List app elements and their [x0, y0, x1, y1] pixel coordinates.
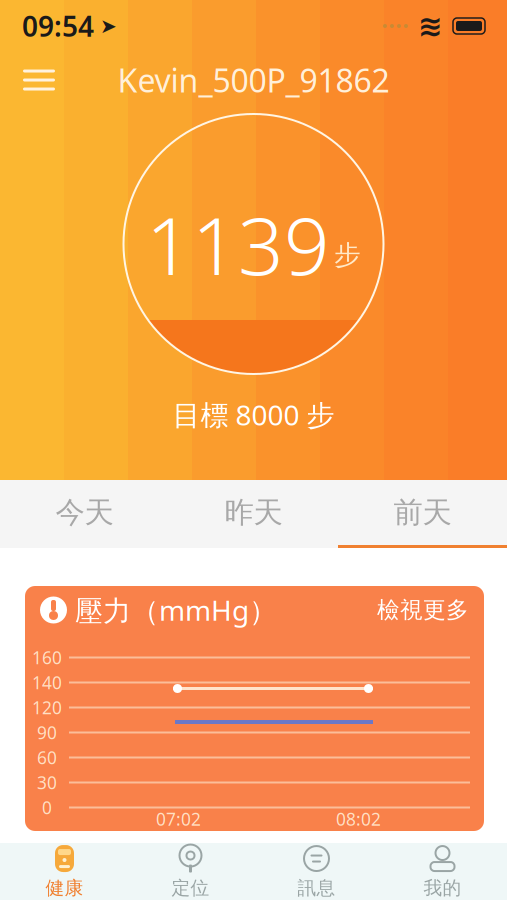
button[interactable]: 檢視更多 — [377, 596, 469, 624]
staticText: 140 — [32, 671, 62, 694]
staticText: 08:02 — [336, 807, 381, 830]
button[interactable]: 定位 — [127, 843, 253, 900]
staticText: 120 — [32, 696, 62, 719]
staticText: 09:54 — [22, 7, 94, 45]
staticText: 定位 — [171, 876, 209, 899]
button[interactable]: 我的 — [379, 843, 505, 900]
button[interactable]: Menu — [12, 57, 66, 103]
staticText: 步 — [334, 239, 361, 271]
button[interactable]: 今天 — [0, 480, 169, 548]
button[interactable]: 健康 — [1, 843, 127, 900]
staticText: 90 — [37, 721, 57, 744]
staticText: 30 — [37, 771, 57, 794]
staticText: 健康 — [45, 876, 83, 899]
staticText: 今天 — [55, 494, 113, 530]
staticText: ➤ — [94, 15, 117, 37]
staticText: 目標 8000 步 — [172, 396, 334, 433]
staticText: 0 — [42, 796, 52, 819]
staticText: Kevin_500P_91862 — [117, 59, 389, 101]
staticText: 訊息 — [297, 876, 335, 899]
staticText: 前天 — [393, 494, 451, 530]
staticText: 160 — [32, 646, 62, 669]
staticText: 1139 — [146, 191, 330, 297]
staticText: 我的 — [423, 876, 461, 899]
button[interactable]: 前天 — [338, 480, 507, 548]
button[interactable]: 昨天 — [169, 480, 338, 548]
staticText: 壓力（mmHg） — [75, 591, 277, 629]
staticText: ≋ — [418, 9, 443, 43]
staticText: 昨天 — [224, 494, 282, 530]
staticText: 07:02 — [156, 807, 201, 830]
staticText: 檢視更多 — [377, 596, 469, 624]
button[interactable]: 訊息 — [253, 843, 379, 900]
staticText: 60 — [37, 746, 57, 769]
